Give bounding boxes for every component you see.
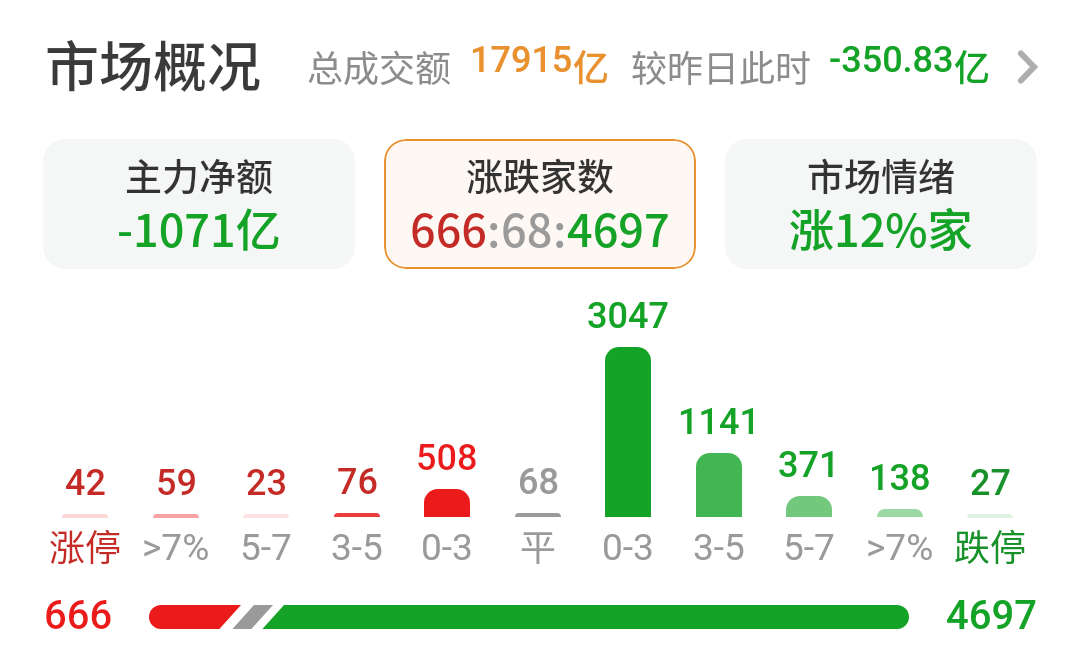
staticText: 4697: [946, 592, 1037, 639]
staticText: 4697: [567, 195, 670, 260]
staticText: 跌停: [954, 519, 1027, 571]
button[interactable]: 涨跌家数: [384, 139, 696, 269]
staticText: 市场情绪: [807, 148, 955, 202]
staticText: 亿: [954, 39, 991, 91]
staticText: >7%: [142, 526, 210, 569]
staticText: 较昨日此时: [631, 40, 812, 92]
staticText: 5-7: [783, 526, 835, 569]
staticText: :: [487, 195, 501, 260]
staticText: 涨停: [49, 519, 122, 571]
staticText: 76: [337, 461, 378, 503]
staticText: 涨12%家: [789, 195, 973, 260]
staticText: :: [553, 195, 567, 260]
staticText: 3047: [587, 295, 669, 337]
staticText: 371: [778, 444, 840, 486]
staticText: 17915: [470, 39, 573, 81]
staticText: 涨跌家数: [466, 148, 614, 202]
staticText: 666: [44, 592, 113, 639]
staticText: 68: [518, 461, 559, 503]
staticText: 27: [970, 462, 1011, 504]
staticText: >7%: [866, 526, 934, 569]
staticText: 59: [156, 462, 197, 504]
staticText: 68: [501, 195, 553, 260]
button[interactable]: 主力净额: [43, 139, 355, 269]
button[interactable]: 市场情绪: [725, 139, 1037, 269]
staticText: 138: [869, 457, 931, 499]
staticText: 666: [410, 195, 487, 260]
button[interactable]: 666: [0, 593, 1080, 643]
staticText: 42: [65, 462, 106, 504]
staticText: 3-5: [693, 526, 745, 569]
staticText: 0-3: [421, 526, 473, 569]
staticText: 0-3: [602, 526, 654, 569]
staticText: 5-7: [240, 526, 292, 569]
staticText: 508: [416, 437, 478, 479]
staticText: 市场概况: [45, 24, 261, 102]
staticText: 亿: [573, 39, 610, 91]
staticText: -350.83: [829, 39, 954, 81]
staticText: 23: [246, 462, 287, 504]
staticText: 3-5: [331, 526, 383, 569]
staticText: 总成交额: [307, 40, 452, 92]
button[interactable]: More market overview: [1000, 37, 1054, 91]
button[interactable]: 市场概况: [0, 0, 1080, 118]
staticText: 平: [520, 519, 557, 571]
staticText: 主力净额: [125, 148, 273, 202]
staticText: 1141: [678, 401, 760, 443]
staticText: -1071亿: [117, 195, 281, 260]
